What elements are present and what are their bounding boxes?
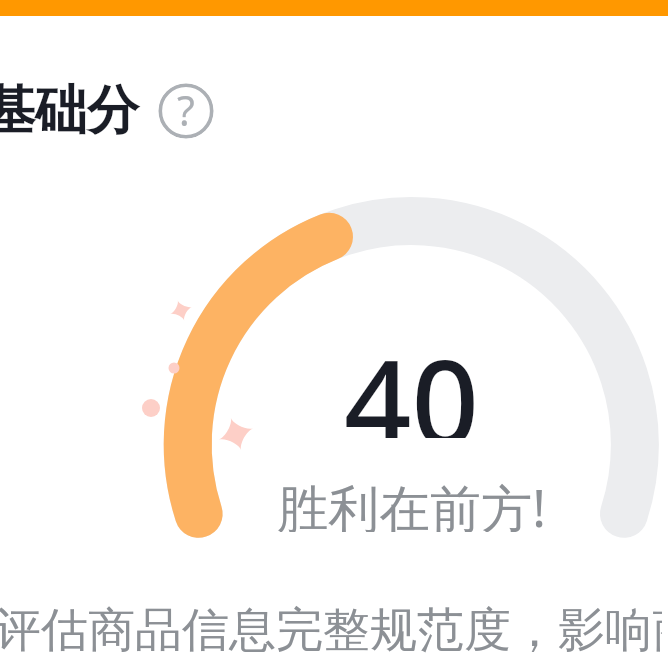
staticText: 基础分	[0, 78, 139, 144]
button[interactable]: 40	[251, 320, 571, 438]
staticText: ?	[177, 83, 195, 138]
staticText: 40	[344, 320, 479, 438]
staticText: 胜利在前方!	[277, 472, 546, 532]
button[interactable]: 基础分说明	[158, 83, 214, 139]
staticText: 评估商品信息完整规范度，影响商	[0, 601, 662, 660]
